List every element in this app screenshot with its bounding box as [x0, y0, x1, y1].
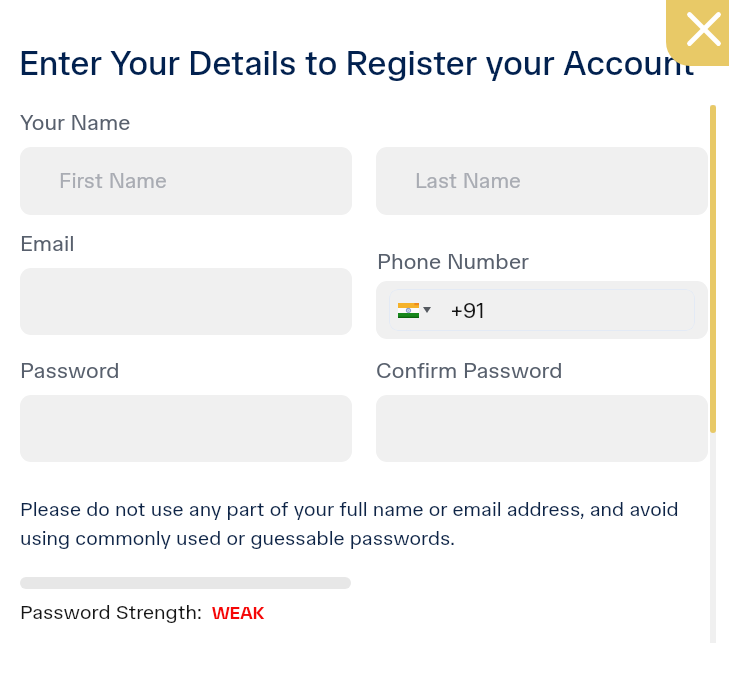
- staticText: Please do not use any part of your full …: [20, 497, 720, 550]
- staticText: Confirm Password: [376, 357, 563, 383]
- staticText: WEAK: [212, 602, 265, 623]
- staticText: First Name: [59, 168, 167, 194]
- staticText: Your Name: [20, 109, 131, 135]
- button[interactable]: Last Name: [376, 147, 708, 215]
- button[interactable]: Scroll position: [710, 105, 716, 433]
- staticText: Last Name: [415, 168, 521, 194]
- button[interactable]: Phone number, country code +91: [376, 281, 708, 339]
- staticText: Password: [20, 357, 120, 383]
- staticText: Email: [20, 230, 75, 256]
- button[interactable]: Close: [666, 0, 729, 66]
- staticText: +91: [450, 297, 485, 323]
- button[interactable]: First Name: [20, 147, 352, 215]
- staticText: Enter Your Details to Register your Acco…: [19, 43, 695, 84]
- staticText: Password Strength:: [20, 600, 202, 624]
- staticText: Phone Number: [377, 248, 529, 274]
